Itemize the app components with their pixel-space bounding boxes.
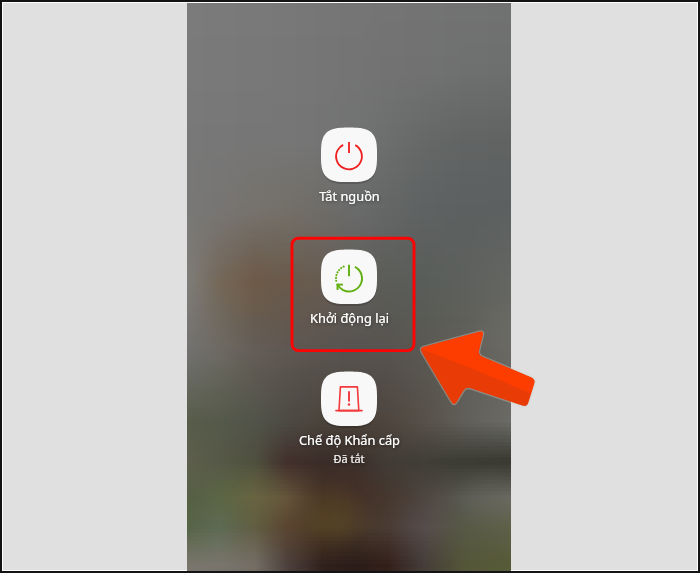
staticText: Chế độ Khẩn cấp bbox=[299, 431, 400, 448]
staticText: Khởi động lại bbox=[310, 309, 389, 326]
staticText: Tắt nguồn bbox=[319, 187, 380, 204]
button[interactable]: Restart bbox=[187, 250, 511, 326]
other: Emergency mode bbox=[321, 372, 377, 428]
button[interactable]: Power off bbox=[187, 128, 511, 204]
staticText: Đã tắt bbox=[333, 451, 365, 466]
other: Restart bbox=[321, 250, 377, 306]
other: Power off bbox=[321, 128, 377, 184]
button[interactable]: Emergency mode bbox=[187, 372, 511, 466]
